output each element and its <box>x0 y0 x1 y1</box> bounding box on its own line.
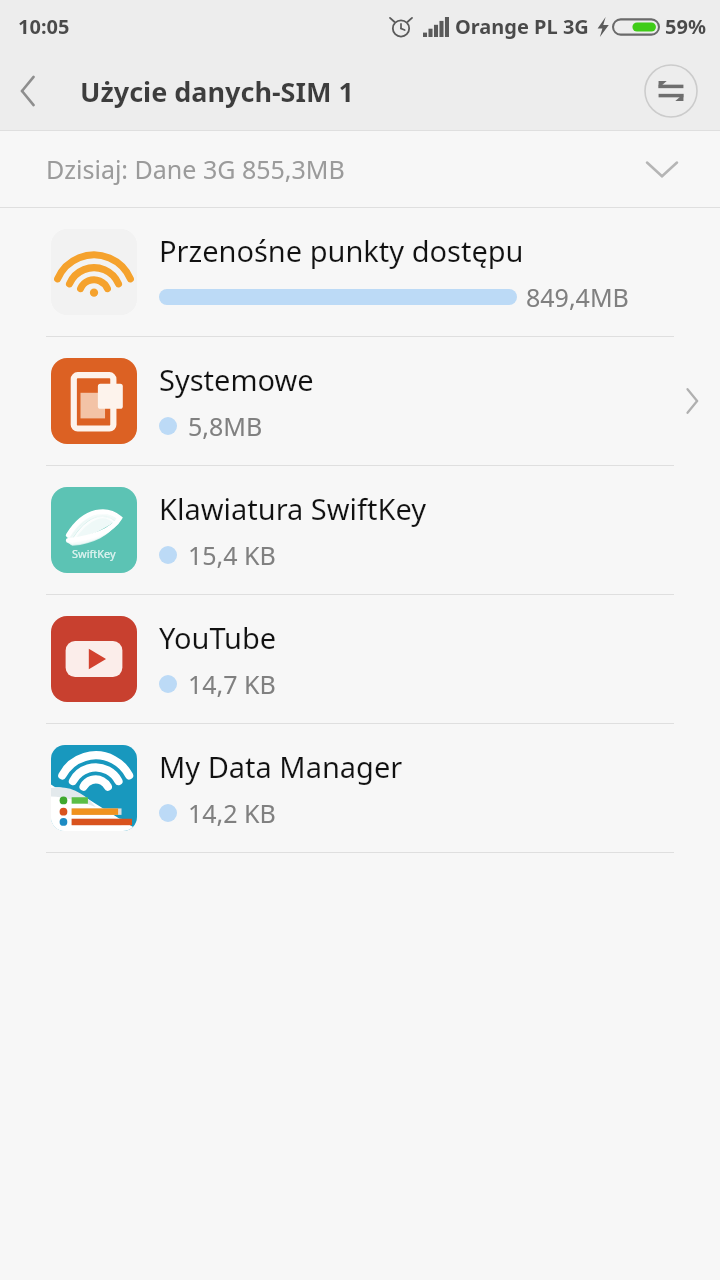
staticText: Systemowe <box>159 360 314 399</box>
staticText: 849,4MB <box>526 280 629 314</box>
staticText: Orange PL 3G <box>455 13 589 40</box>
staticText: Dzisiaj: Dane 3G 855,3MB <box>46 152 345 186</box>
staticText: 10:05 <box>18 13 70 40</box>
staticText: 59% <box>665 13 706 40</box>
staticText: SwiftKey <box>72 546 116 561</box>
button[interactable]: SwiftKey <box>0 466 720 594</box>
button[interactable]: My Data Manager <box>0 724 720 852</box>
staticText: Przenośne punkty dostępu <box>159 231 524 270</box>
staticText: YouTube <box>159 618 277 657</box>
staticText: My Data Manager <box>159 747 403 786</box>
staticText: Użycie danych-SIM 1 <box>80 73 354 110</box>
button[interactable]: Przenośne punkty dostępu <box>0 208 720 336</box>
staticText: 15,4 KB <box>188 538 276 572</box>
staticText: Klawiatura SwiftKey <box>159 489 427 528</box>
button[interactable]: Dzisiaj: Dane 3G 855,3MB <box>0 131 720 207</box>
staticText: 14,7 KB <box>188 667 276 701</box>
button[interactable]: YouTube <box>0 595 720 723</box>
staticText: 14,2 KB <box>188 796 276 830</box>
button[interactable]: Systemowe <box>0 337 720 465</box>
button[interactable]: Sort data usage <box>644 64 698 118</box>
button[interactable]: Back <box>0 63 56 119</box>
staticText: 5,8MB <box>188 409 263 443</box>
